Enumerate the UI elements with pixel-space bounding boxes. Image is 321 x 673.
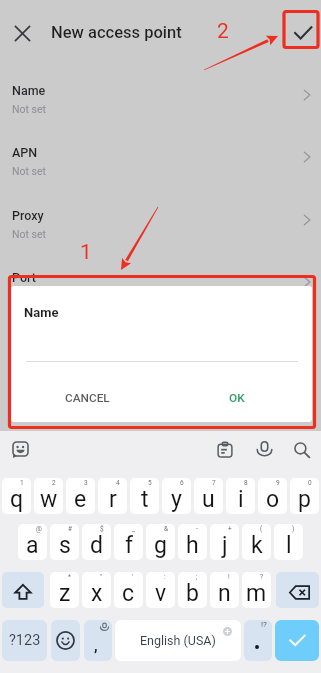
button[interactable]: Port bbox=[0, 265, 321, 327]
staticText: !? bbox=[261, 620, 267, 629]
staticText: l bbox=[286, 532, 292, 559]
staticText: APN bbox=[12, 145, 38, 160]
staticText: k bbox=[251, 532, 263, 559]
staticText: 3 bbox=[84, 479, 88, 487]
staticText: @ bbox=[36, 525, 42, 533]
button[interactable]: ( bbox=[242, 524, 271, 560]
button[interactable]: !? bbox=[244, 620, 272, 661]
button[interactable]: CANCEL bbox=[57, 386, 118, 410]
button[interactable]: ?123 bbox=[2, 620, 47, 661]
button[interactable]: Clipboard bbox=[217, 442, 233, 458]
staticText: g bbox=[154, 532, 167, 559]
button[interactable]: Search bbox=[294, 442, 310, 458]
staticText: Proxy bbox=[12, 208, 44, 223]
staticText: , bbox=[94, 637, 98, 655]
button[interactable]: & bbox=[146, 524, 175, 560]
button[interactable]: 7 bbox=[194, 478, 223, 514]
staticText: 5 bbox=[148, 479, 152, 487]
staticText: * bbox=[68, 573, 71, 581]
button[interactable]: Proxy bbox=[0, 203, 321, 265]
staticText: h bbox=[186, 532, 199, 559]
staticText: w bbox=[40, 486, 58, 513]
staticText: & bbox=[164, 525, 169, 533]
staticText: ) bbox=[292, 525, 295, 533]
staticText: b bbox=[186, 580, 199, 607]
button[interactable]: 9 bbox=[258, 478, 287, 514]
button[interactable]: @ bbox=[18, 524, 47, 560]
button[interactable]: Voice input bbox=[256, 441, 273, 458]
button[interactable]: 6 bbox=[162, 478, 191, 514]
staticText: t bbox=[141, 486, 149, 513]
staticText: 2 bbox=[52, 479, 56, 487]
staticText: e bbox=[74, 486, 87, 513]
staticText: 1 bbox=[80, 240, 92, 265]
button[interactable]: Shift bbox=[2, 572, 44, 608]
button[interactable]: : bbox=[146, 572, 175, 608]
staticText: p bbox=[298, 486, 311, 513]
staticText: ?123 bbox=[9, 632, 41, 649]
staticText: v bbox=[155, 580, 167, 607]
button[interactable]: Emoji bbox=[51, 620, 80, 661]
button[interactable]: Stickers bbox=[12, 441, 29, 458]
button[interactable]: Close bbox=[11, 22, 34, 45]
button[interactable]: APN bbox=[0, 140, 321, 202]
staticText: y bbox=[171, 486, 182, 513]
staticText: 8 bbox=[244, 479, 248, 487]
button[interactable]: - bbox=[178, 524, 207, 560]
button[interactable]: Enter bbox=[275, 620, 319, 661]
staticText: Name bbox=[24, 305, 59, 320]
button[interactable]: 2 bbox=[34, 478, 63, 514]
staticText: r bbox=[109, 486, 117, 513]
button[interactable]: English (USA) bbox=[115, 620, 241, 661]
staticText: 4 bbox=[116, 479, 120, 487]
button[interactable]: 8 bbox=[226, 478, 255, 514]
staticText: z bbox=[59, 580, 71, 607]
button[interactable]: 1 bbox=[2, 478, 31, 514]
staticText: Not set bbox=[12, 103, 46, 115]
staticText: m bbox=[246, 580, 267, 607]
button[interactable]: 5 bbox=[130, 478, 159, 514]
staticText: Not set bbox=[12, 165, 46, 177]
button[interactable]: Name bbox=[0, 78, 321, 140]
staticText: f bbox=[125, 532, 133, 559]
button[interactable]: + bbox=[210, 524, 239, 560]
button[interactable]: * bbox=[50, 572, 79, 608]
staticText: Not set bbox=[12, 228, 46, 240]
staticText: Port bbox=[12, 270, 36, 285]
button[interactable]: ? bbox=[242, 572, 271, 608]
staticText: d bbox=[90, 532, 103, 559]
button[interactable]: ! bbox=[210, 572, 239, 608]
button[interactable]: Save access point bbox=[291, 21, 315, 45]
staticText: ' bbox=[132, 573, 134, 581]
staticText: English (USA) bbox=[140, 633, 216, 648]
button[interactable]: , bbox=[84, 620, 112, 661]
button[interactable]: _ bbox=[114, 524, 143, 560]
staticText: n bbox=[218, 580, 231, 607]
button[interactable]: " bbox=[82, 572, 111, 608]
staticText: 2 bbox=[217, 19, 229, 44]
staticText: + bbox=[228, 525, 232, 533]
button[interactable]: ' bbox=[114, 572, 143, 608]
button[interactable]: 3 bbox=[66, 478, 95, 514]
staticText: u bbox=[202, 486, 215, 513]
button[interactable]: Backspace bbox=[276, 572, 319, 608]
staticText: 6 bbox=[180, 479, 184, 487]
staticText: 1 bbox=[20, 479, 24, 487]
button[interactable]: 0 bbox=[290, 478, 319, 514]
staticText: New access point bbox=[51, 23, 182, 42]
button[interactable]: $ bbox=[82, 524, 111, 560]
staticText: s bbox=[59, 532, 71, 559]
button[interactable]: ) bbox=[274, 524, 303, 560]
button[interactable]: OK bbox=[221, 386, 253, 410]
staticText: ? bbox=[260, 573, 264, 581]
staticText: OK bbox=[229, 391, 245, 405]
button[interactable]: ; bbox=[178, 572, 207, 608]
staticText: x bbox=[91, 580, 103, 607]
staticText: a bbox=[26, 532, 39, 559]
button[interactable]: # bbox=[50, 524, 79, 560]
button[interactable]: 4 bbox=[98, 478, 127, 514]
staticText: 7 bbox=[212, 479, 216, 487]
staticText: 9 bbox=[276, 479, 280, 487]
staticText: Name bbox=[12, 83, 46, 98]
